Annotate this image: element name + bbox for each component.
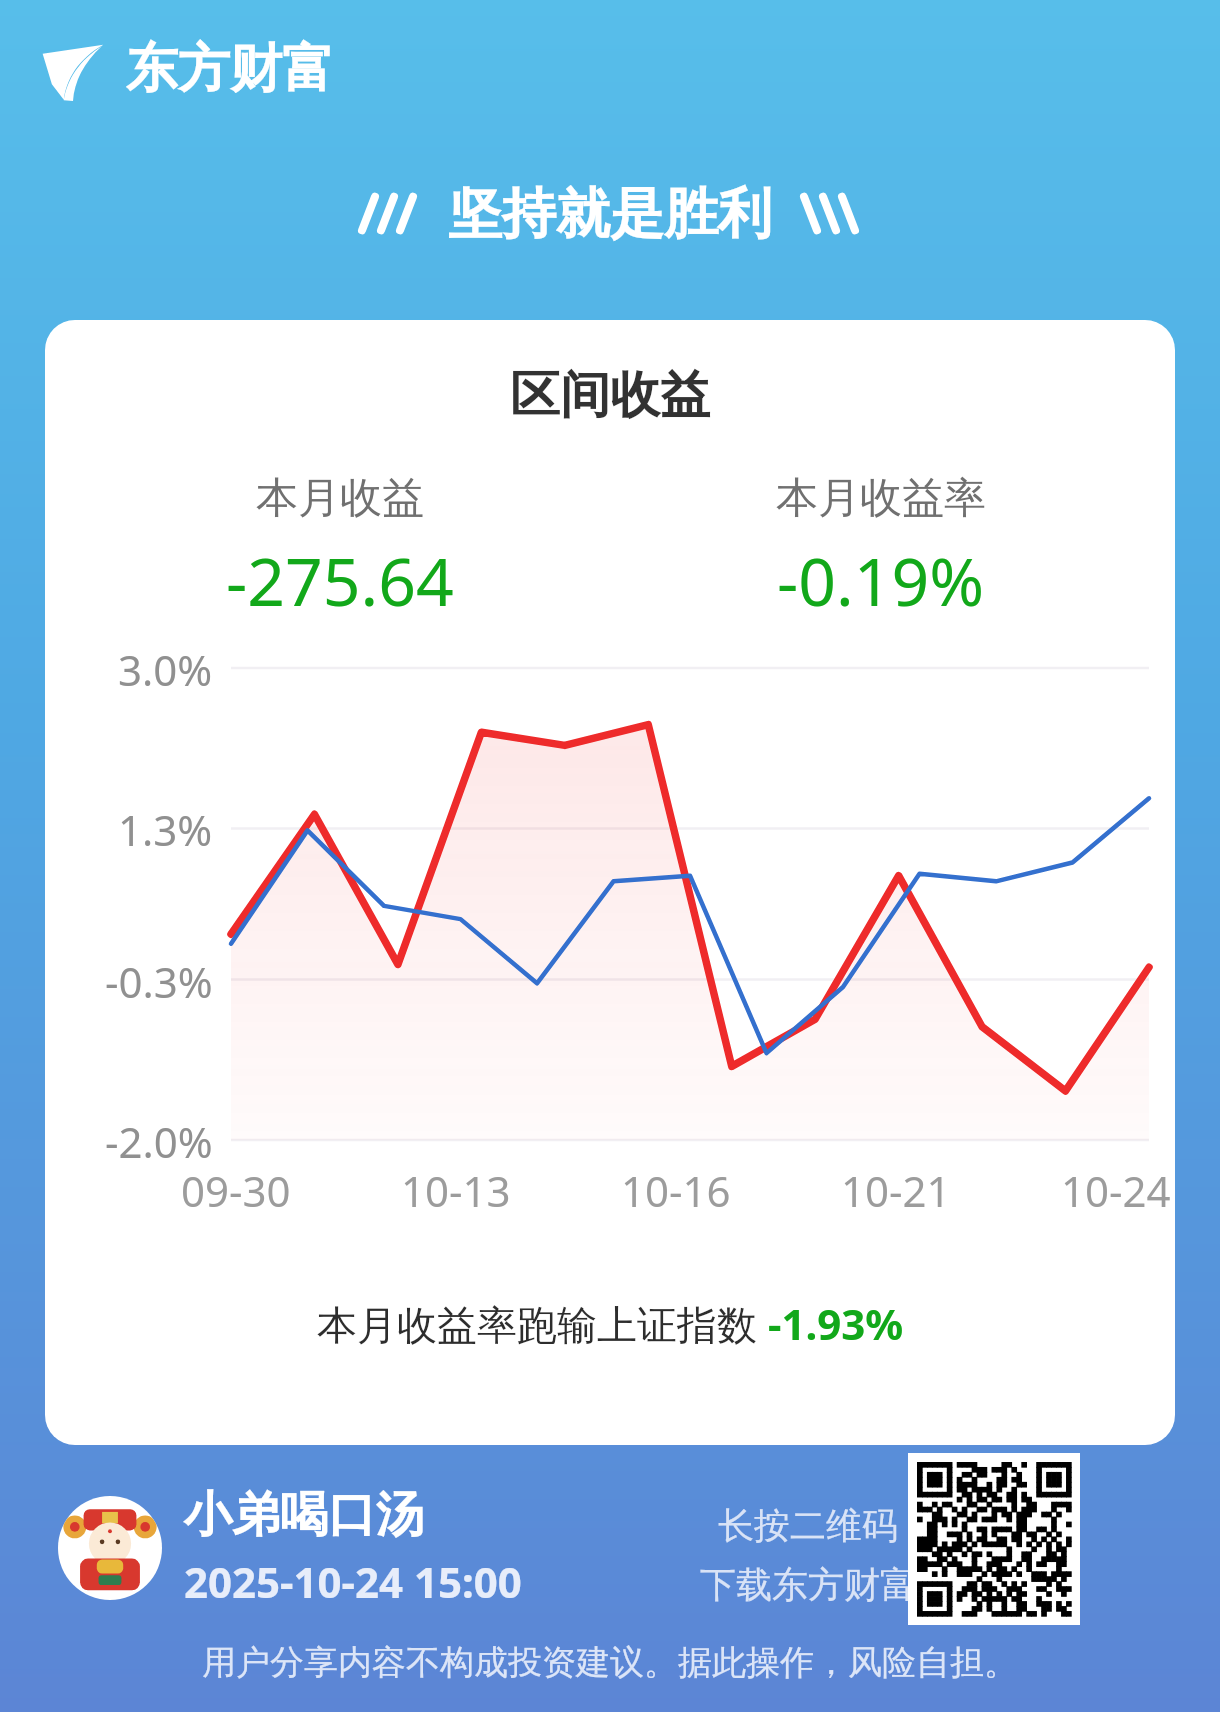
staticText: -1.93% [768, 1295, 904, 1352]
staticText: 用户分享内容不构成投资建议。据此操作，风险自担。 [202, 1641, 1018, 1684]
staticText: 下载东方财富 [700, 1562, 916, 1607]
staticText: -275.64 [226, 535, 454, 625]
staticText: 10-21 [841, 1162, 951, 1219]
staticText: 3.0% [118, 641, 213, 698]
staticText: 10-24 [1061, 1162, 1171, 1219]
staticText: -2.0% [105, 1113, 213, 1170]
staticText: 10-13 [401, 1162, 511, 1219]
button[interactable]: 小弟喝口汤 [58, 1485, 522, 1610]
other: 东方财富 [40, 37, 106, 101]
staticText: 本月收益 [256, 472, 424, 525]
button[interactable]: 东方财富 [40, 36, 334, 102]
button[interactable]: 二维码 [908, 1453, 1080, 1625]
staticText: 区间收益 [510, 364, 710, 427]
staticText: 本月收益率跑输上证指数 [317, 1296, 768, 1351]
staticText: 小弟喝口汤 [184, 1485, 424, 1545]
staticText: 长按二维码 [718, 1503, 898, 1548]
staticText: 坚持就是胜利 [448, 180, 772, 248]
staticText: 2025-10-24 15:00 [184, 1553, 522, 1610]
staticText: -0.3% [105, 953, 213, 1010]
staticText: 10-16 [621, 1162, 731, 1219]
staticText: 1.3% [118, 801, 213, 858]
staticText: 本月收益率 [776, 472, 986, 525]
staticText: 东方财富 [126, 36, 334, 102]
staticText: -0.19% [777, 535, 985, 625]
staticText: 09-30 [181, 1162, 291, 1219]
